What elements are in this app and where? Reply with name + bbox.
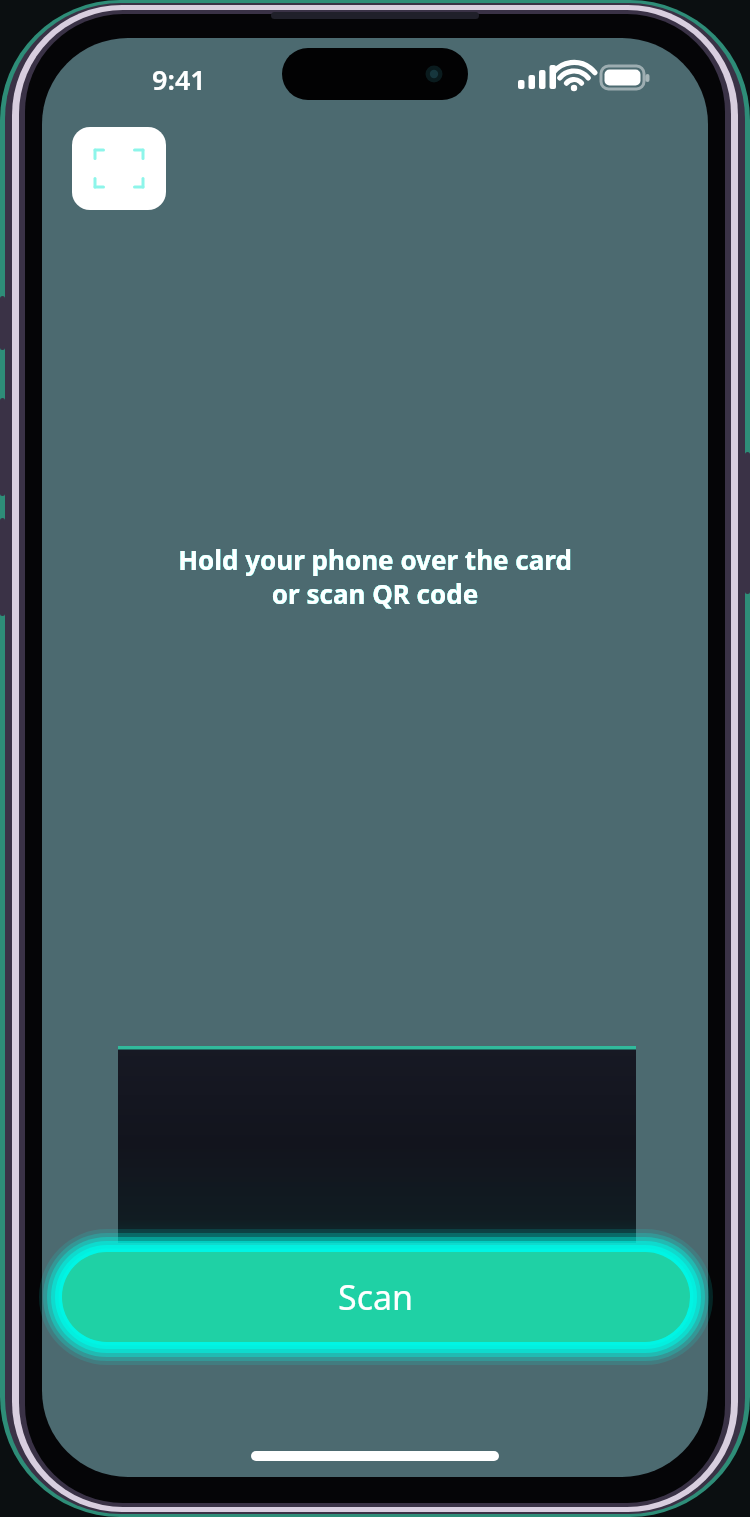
staticText: Scan <box>338 1274 414 1320</box>
staticText: Hold your phone over the card or scan QR… <box>178 542 572 611</box>
button[interactable]: Scan <box>62 1252 690 1342</box>
staticText: Hold your phone over the card or scan QR… <box>178 542 572 611</box>
button[interactable]: Scan <box>72 127 166 210</box>
staticText: Hold your phone over the card or scan QR… <box>178 542 572 611</box>
staticText: Hold your phone over the card or scan QR… <box>178 542 572 611</box>
staticText: 9:41 <box>152 61 206 98</box>
staticText: Hold your phone over the card or scan QR… <box>178 542 572 611</box>
